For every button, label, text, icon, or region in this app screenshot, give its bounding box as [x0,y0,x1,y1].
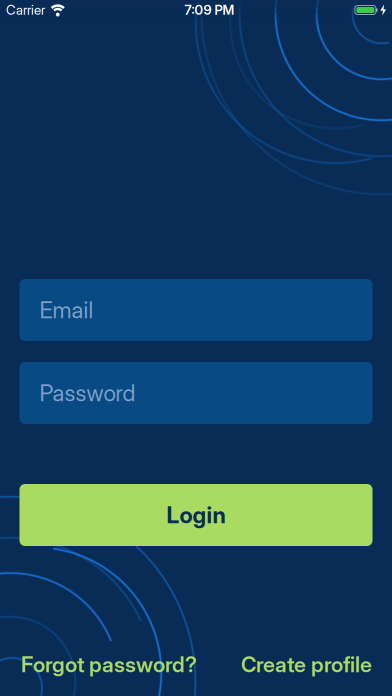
staticText: 7:09 PM [184,2,234,18]
staticText: Login [166,502,225,528]
button[interactable]: Create profile [241,652,372,677]
staticText: Create profile [241,652,372,677]
button[interactable]: Password [19,362,372,424]
button[interactable]: Login [19,484,372,546]
staticText: Email [39,297,93,323]
staticText: Password [39,380,135,406]
button[interactable]: Email [19,279,372,341]
staticText: Forgot password? [21,652,197,677]
staticText: Carrier [6,2,45,18]
button[interactable]: Forgot password? [21,652,197,677]
